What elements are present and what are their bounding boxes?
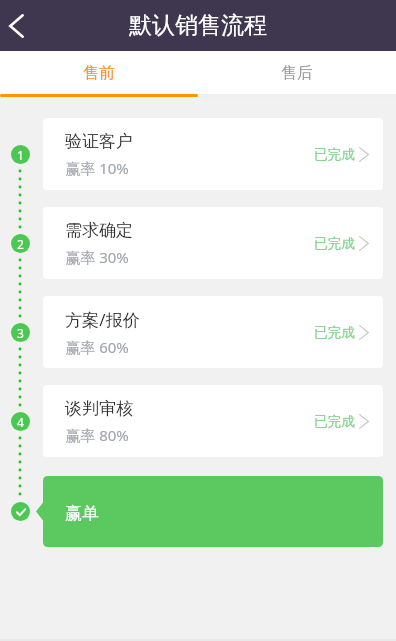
staticText: 赢率 30% [65, 247, 129, 267]
staticText: 需求确定 [65, 220, 133, 241]
button[interactable]: 售前 [0, 51, 198, 94]
staticText: 赢单 [65, 503, 99, 524]
staticText: 赢率 10% [65, 158, 129, 178]
staticText: 赢率 80% [65, 425, 129, 445]
button[interactable]: 谈判审核 [43, 385, 383, 457]
button[interactable]: 赢单 [43, 476, 383, 547]
button[interactable]: 方案/报价 [43, 296, 383, 368]
staticText: 默认销售流程 [129, 11, 267, 40]
staticText: 方案/报价 [65, 308, 140, 331]
staticText: 2 [17, 236, 24, 252]
staticText: 已完成 [314, 413, 355, 430]
staticText: 已完成 [314, 235, 355, 252]
staticText: 已完成 [314, 324, 355, 341]
staticText: 售前 [83, 63, 115, 83]
staticText: 4 [17, 414, 24, 430]
button[interactable]: 售后 [198, 51, 396, 94]
staticText: 1 [17, 147, 24, 163]
button[interactable]: Back [0, 0, 44, 51]
button[interactable]: Completed [11, 502, 30, 521]
staticText: 3 [17, 325, 24, 341]
button[interactable]: 需求确定 [43, 207, 383, 279]
button[interactable]: 验证客户 [43, 118, 383, 190]
staticText: 验证客户 [65, 131, 133, 152]
staticText: 赢率 60% [65, 337, 129, 357]
staticText: 谈判审核 [65, 398, 133, 419]
staticText: 已完成 [314, 146, 355, 163]
staticText: 售后 [281, 63, 313, 83]
